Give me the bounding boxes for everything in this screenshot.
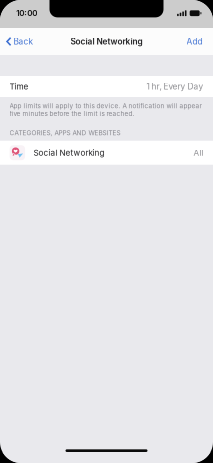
staticText: five minutes before the limit is reached… <box>10 110 135 117</box>
staticText: Social Networking <box>70 36 142 46</box>
staticText: 10:00 <box>16 8 37 18</box>
staticText: Time <box>10 82 29 91</box>
button[interactable]: Back <box>0 28 37 55</box>
staticText: App limits will apply to this device. A … <box>10 102 202 110</box>
staticText: Back <box>13 36 33 46</box>
staticText: Social Networking <box>34 148 105 158</box>
staticText: Add <box>186 36 202 46</box>
button[interactable]: Time <box>0 76 213 97</box>
button[interactable]: Social Networking <box>0 141 213 165</box>
staticText: 1 hr, Every Day <box>146 81 203 91</box>
staticText: All <box>193 148 203 158</box>
button[interactable]: Add <box>180 28 213 55</box>
staticText: CATEGORIES, APPS AND WEBSITES <box>10 129 121 137</box>
